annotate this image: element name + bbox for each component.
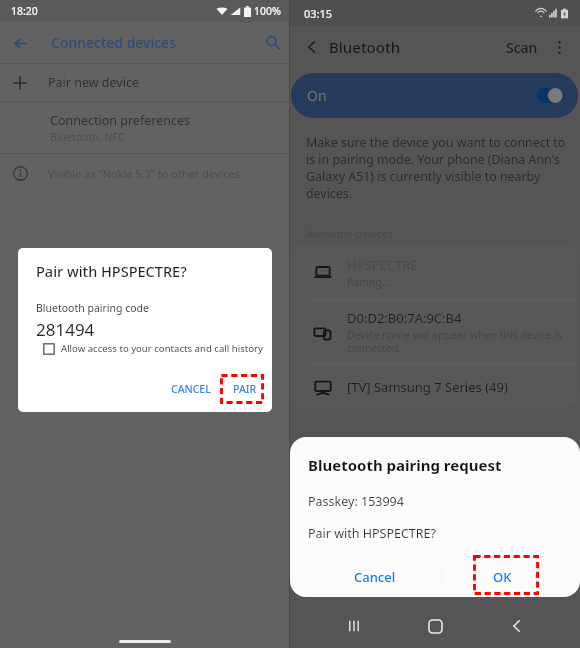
staticText: HPSPECTRE [347,256,418,274]
staticText: Connection preferences [50,112,190,129]
button[interactable]: OK [481,562,524,592]
button[interactable]: CANCEL [165,378,217,400]
button[interactable]: PAIR [226,378,264,400]
staticText: OK [493,568,512,586]
staticText: Allow access to your contacts and call h… [61,342,263,355]
button[interactable]: Recents [336,608,372,644]
staticText: D0:D2:B0:7A:9C:B4 [347,309,462,327]
staticText: Device name will appear when this device… [347,328,563,355]
staticText: 03:15 [304,6,333,21]
button[interactable]: Home [417,608,453,644]
button[interactable]: On [291,73,578,118]
button[interactable]: Connection preferences [0,102,289,153]
staticText: 18:20 [11,4,38,18]
button[interactable]: Back [499,608,535,644]
button[interactable]: Back [8,31,32,55]
staticText: CANCEL [171,382,211,396]
staticText: Bluetooth pairing request [308,455,502,475]
staticText: Bluetooth [329,37,401,57]
staticText: Pair with HPSPECTRE? [308,525,436,542]
button[interactable]: Back [302,37,322,57]
staticText: is in pairing mode. Your phone (Diana An… [306,151,560,168]
button[interactable]: Allow access checkbox [43,343,55,355]
button[interactable]: Visible as “Nokia 5.3” to other devices [0,154,289,192]
staticText: Cancel [354,568,396,586]
button[interactable]: Search [261,31,285,55]
button[interactable]: D0:D2:B0:7A:9C:B4 [291,300,578,364]
staticText: Make sure the device you want to connect… [306,134,566,151]
staticText: [TV] Samsung 7 Series (49) [347,378,508,396]
staticText: 100% [254,4,281,18]
staticText: Pairing... [347,275,391,289]
staticText: Visible as “Nokia 5.3” to other devices [48,166,241,181]
staticText: Connected devices [51,33,176,52]
staticText: Passkey: 153994 [308,493,404,510]
staticText: Available devices [306,226,394,241]
staticText: 281494 [36,318,95,341]
staticText: Scan [506,38,538,57]
staticText: Bluetooth pairing code [36,301,150,315]
staticText: Pair with HPSPECTRE? [36,261,187,281]
button[interactable]: Scan [502,33,542,62]
staticText: Pair new device [48,74,139,91]
staticText: On [307,86,327,105]
staticText: Galaxy A51) is currently visible to near… [306,168,541,185]
button[interactable]: More options [548,36,570,58]
button[interactable]: HPSPECTRE [291,245,578,299]
button[interactable]: Cancel [342,562,408,592]
staticText: Bluetooth, NFC [50,130,125,144]
button[interactable]: [TV] Samsung 7 Series (49) [291,365,578,408]
button[interactable]: Pair new device [0,64,289,101]
staticText: PAIR [233,382,257,396]
staticText: devices. [306,185,353,202]
